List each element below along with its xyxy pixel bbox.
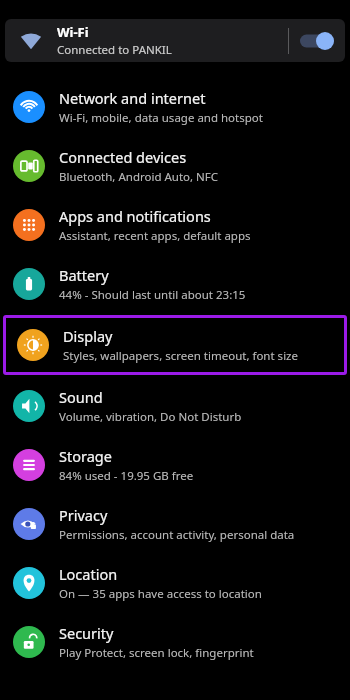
button[interactable]: Battery xyxy=(0,256,350,312)
button[interactable]: Security xyxy=(0,614,350,670)
staticText: Connected devices xyxy=(59,147,187,167)
button[interactable]: Location xyxy=(0,555,350,611)
staticText: Permissions, account activity, personal … xyxy=(59,527,295,543)
staticText: Storage xyxy=(59,446,112,466)
staticText: Play Protect, screen lock, fingerprint xyxy=(59,645,254,661)
staticText: On — 35 apps have access to location xyxy=(59,586,262,602)
staticText: Wi-Fi xyxy=(57,23,89,41)
staticText: Battery xyxy=(59,265,109,285)
button[interactable]: Toggle Wi-Fi xyxy=(289,19,345,62)
staticText: Apps and notifications xyxy=(59,206,211,226)
staticText: Sound xyxy=(59,387,103,407)
staticText: Connected to PANKIL xyxy=(57,42,172,58)
button[interactable]: Storage xyxy=(0,437,350,493)
staticText: Volume, vibration, Do Not Disturb xyxy=(59,409,242,425)
staticText: Bluetooth, Android Auto, NFC xyxy=(59,169,219,185)
button[interactable]: Apps and notifications xyxy=(0,197,350,253)
button[interactable]: Connected devices xyxy=(0,138,350,194)
staticText: Display xyxy=(63,326,113,346)
staticText: Privacy xyxy=(59,505,108,525)
button[interactable]: Network and internet xyxy=(0,79,350,135)
button[interactable]: Display xyxy=(3,315,347,375)
button[interactable]: Wi-Fi xyxy=(5,19,345,62)
button[interactable]: Privacy xyxy=(0,496,350,552)
staticText: 84% used - 19.95 GB free xyxy=(59,468,194,484)
button[interactable]: Sound xyxy=(0,378,350,434)
staticText: Styles, wallpapers, screen timeout, font… xyxy=(63,348,298,364)
staticText: Security xyxy=(59,623,114,643)
staticText: 44% - Should last until about 23:15 xyxy=(59,287,246,303)
staticText: Location xyxy=(59,564,118,584)
staticText: Assistant, recent apps, default apps xyxy=(59,228,251,244)
staticText: Wi-Fi, mobile, data usage and hotspot xyxy=(59,110,263,126)
staticText: Network and internet xyxy=(59,88,206,108)
